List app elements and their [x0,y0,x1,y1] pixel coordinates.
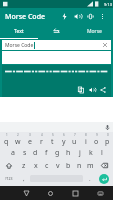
button[interactable]: Shift [0,159,18,172]
staticText: o [94,137,99,146]
button[interactable]: 3 [24,133,36,146]
button[interactable]: Share [97,84,108,95]
staticText: e [28,137,32,146]
button[interactable]: m [85,159,96,172]
staticText: f [45,148,48,158]
button[interactable]: Home [38,186,63,200]
staticText: s [23,148,27,158]
button[interactable]: 9 [91,133,102,146]
staticText: 8 [85,133,87,137]
button[interactable]: l [96,146,107,159]
staticText: b [66,161,71,171]
button[interactable]: ?123 [0,172,18,185]
button[interactable]: j [74,146,85,159]
button[interactable]: Recents [63,186,88,200]
staticText: 3 [29,133,31,137]
button[interactable]: Play sound [86,84,97,95]
button[interactable]: Enter [99,174,109,184]
staticText: , [23,175,25,183]
button[interactable]: n [74,159,85,172]
staticText: q [4,137,9,146]
staticText: a [11,148,15,158]
button[interactable]: z [18,159,30,172]
button[interactable]: 1 [0,133,12,146]
button[interactable]: Morse [75,25,113,38]
button[interactable]: Sound [71,10,84,23]
button[interactable]: c [41,159,52,172]
staticText: 4 [41,133,43,137]
button[interactable]: x [30,159,41,172]
button[interactable]: 6 [58,133,69,146]
button[interactable]: h [63,146,74,159]
staticText: 9 [96,133,98,137]
staticText: c [45,161,49,171]
button[interactable]: Switch keyboard [88,186,113,200]
button[interactable]: Copy [75,84,86,95]
button[interactable]: 4 [36,133,47,146]
button[interactable]: Voice input [103,123,111,131]
staticText: Morse [87,28,102,35]
button[interactable]: 7 [69,133,80,146]
button[interactable]: , [18,172,29,185]
button[interactable]: . [84,172,95,185]
button[interactable]: 0 [102,133,113,146]
staticText: x [34,161,38,171]
button[interactable]: 2 [12,133,24,146]
staticText: d [33,148,38,158]
staticText: z [22,161,26,171]
button[interactable]: g [52,146,63,159]
staticText: 6 [63,133,65,137]
staticText: Text [14,28,24,35]
staticText: m [87,161,94,171]
staticText: v [56,161,60,171]
button[interactable]: v [52,159,63,172]
button[interactable]: d [30,146,41,159]
button[interactable]: Backspace [96,159,113,172]
button[interactable]: s [19,146,30,159]
staticText: y [62,137,66,146]
button[interactable]: Clear text [101,41,109,49]
button[interactable]: a [7,146,19,159]
button[interactable]: b [63,159,74,172]
button[interactable]: 8 [80,133,91,146]
staticText: i [85,137,87,146]
staticText: k [89,148,93,158]
staticText: r [40,137,43,146]
staticText: u [72,137,77,146]
staticText: 1 [6,133,8,137]
staticText: Morse Code [5,12,45,22]
staticText: p [105,137,110,146]
button[interactable]: Flashlight [58,10,71,23]
staticText: 5 [52,133,54,137]
staticText: n [77,161,82,171]
staticText: j [79,148,81,158]
button[interactable]: Vibrate [84,10,97,23]
button[interactable]: f [41,146,52,159]
button[interactable]: 5 [47,133,58,146]
button[interactable]: k [85,146,96,159]
staticText: w [15,137,21,146]
staticText: 7 [74,133,76,137]
staticText: 0 [107,133,109,137]
staticText: 9:13 [104,2,112,7]
staticText: Morse Code [5,42,34,49]
button[interactable]: Text [0,25,37,38]
staticText: l [101,148,103,158]
button[interactable]: Swap [37,25,75,38]
staticText: . [89,175,91,183]
button[interactable]: More options [97,11,108,22]
staticText: 2 [17,133,19,137]
button[interactable]: Back [14,186,38,200]
staticText: t [51,137,54,146]
staticText: ?123 [5,176,13,181]
staticText: g [55,148,60,158]
staticText: h [66,148,71,158]
